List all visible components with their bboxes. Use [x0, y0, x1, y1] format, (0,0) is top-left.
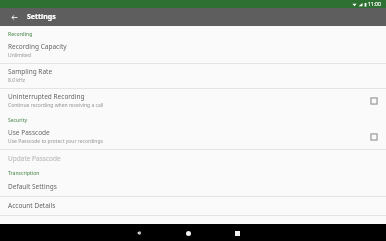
button[interactable]: Update Passcode [0, 150, 386, 168]
button[interactable]: Account Details [0, 197, 386, 215]
button[interactable]: Uninterrupted Recording [0, 89, 386, 113]
staticText: 11:00 [368, 1, 381, 8]
staticText: Use Passcode [8, 128, 50, 137]
staticText: Use Passcode to protect your recordings [8, 138, 103, 145]
staticText: Continue recording when receiving a call [8, 102, 104, 109]
staticText: Security [8, 117, 28, 124]
button[interactable]: Default Settings [0, 178, 386, 196]
staticText: Default Settings [8, 182, 57, 191]
button[interactable]: Home [180, 225, 196, 241]
button[interactable]: Back [8, 11, 20, 23]
staticText: Recording Capacity [8, 42, 67, 51]
staticText: Account Details [8, 201, 56, 210]
button[interactable]: Recent apps [229, 225, 245, 241]
staticText: 8.0 kHz [8, 77, 26, 84]
staticText: Sampling Rate [8, 67, 53, 76]
button[interactable]: Recording Capacity [0, 39, 386, 63]
staticText: Recording [8, 31, 33, 38]
staticText: Update Passcode [8, 154, 61, 163]
staticText: Unlimited [8, 52, 31, 59]
button[interactable]: Use Passcode [0, 125, 386, 149]
staticText: Transcription [8, 170, 40, 177]
button[interactable]: Sampling Rate [0, 64, 386, 88]
staticText: Settings [27, 12, 56, 22]
staticText: Uninterrupted Recording [8, 92, 85, 101]
button[interactable]: Back [131, 225, 147, 241]
